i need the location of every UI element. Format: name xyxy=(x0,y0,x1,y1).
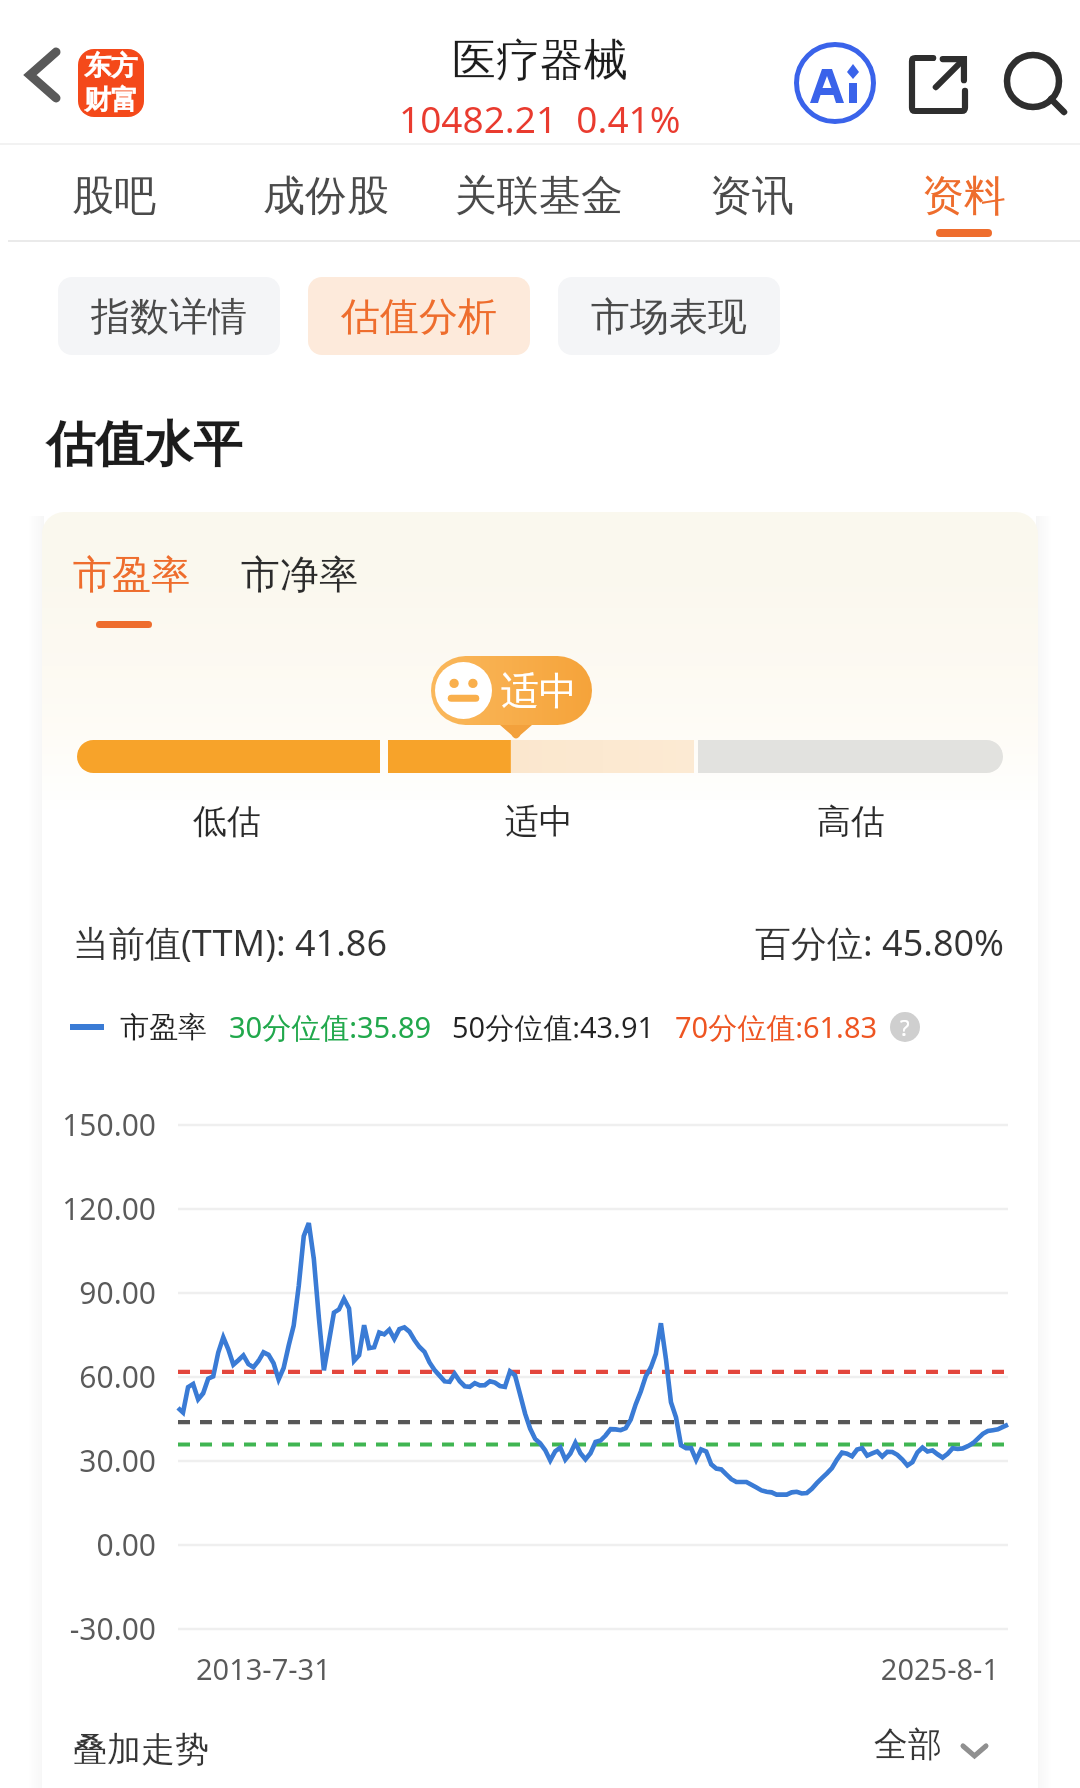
button[interactable]: 股吧 xyxy=(4,158,224,240)
button[interactable]: 指数详情 xyxy=(58,277,280,355)
staticText: 医疗器械 xyxy=(452,33,628,88)
staticText: 估值水平 xyxy=(46,414,242,476)
staticText: 财富 xyxy=(84,83,138,117)
staticText: 30分位值:35.89 xyxy=(229,1007,432,1047)
button[interactable]: 关联基金 xyxy=(429,158,649,240)
button[interactable]: 市场表现 xyxy=(558,277,780,355)
staticText: 30.00 xyxy=(42,1440,156,1481)
staticText: 东方 xyxy=(84,49,138,83)
staticText: 市盈率 xyxy=(120,1009,207,1046)
button[interactable]: AI助手 xyxy=(793,41,877,125)
staticText: 0.00 xyxy=(42,1524,156,1565)
staticText: 百分位: 45.80% xyxy=(693,918,1004,967)
staticText: 全部 xyxy=(874,1723,942,1766)
button[interactable]: Search xyxy=(991,39,1075,123)
staticText: 叠加走势 xyxy=(73,1728,209,1771)
button[interactable]: 市净率 xyxy=(241,550,358,599)
button[interactable]: 资料 xyxy=(854,158,1074,240)
staticText: 150.00 xyxy=(42,1104,156,1145)
staticText: 资讯 xyxy=(710,170,794,223)
button[interactable]: Share xyxy=(897,43,980,126)
button[interactable]: 东方财富 xyxy=(78,49,144,117)
staticText: 70分位值:61.83 xyxy=(675,1007,878,1047)
staticText: 适中 xyxy=(439,800,639,843)
staticText: -30.00 xyxy=(42,1608,156,1649)
staticText: 低估 xyxy=(127,800,327,843)
staticText: 高估 xyxy=(751,800,951,843)
staticText: 市场表现 xyxy=(591,292,747,341)
staticText: 2013-7-31 xyxy=(196,1649,331,1688)
staticText: 当前值(TTM): 41.86 xyxy=(73,918,388,967)
staticText: 50分位值:43.91 xyxy=(452,1007,655,1047)
staticText: 成份股 xyxy=(263,170,389,223)
staticText: 股吧 xyxy=(72,170,156,223)
staticText: 指数详情 xyxy=(91,292,247,341)
staticText: 60.00 xyxy=(42,1356,156,1397)
button[interactable]: 说明 xyxy=(890,1012,920,1042)
staticText: 估值分析 xyxy=(341,292,497,341)
staticText: 10482.21 0.41% xyxy=(399,93,681,143)
staticText: 适中 xyxy=(501,667,577,715)
button[interactable]: Back xyxy=(6,38,80,112)
button[interactable]: 市盈率 xyxy=(73,550,190,628)
button[interactable]: 全部 xyxy=(874,1718,988,1770)
staticText: ? xyxy=(900,1012,910,1042)
staticText: 资料 xyxy=(922,170,1006,223)
staticText: 关联基金 xyxy=(455,170,623,223)
button[interactable]: 资讯 xyxy=(642,158,862,240)
staticText: 2025-8-1 xyxy=(799,1649,999,1688)
button[interactable]: 估值分析 xyxy=(308,277,530,355)
staticText: 90.00 xyxy=(42,1272,156,1313)
staticText: 120.00 xyxy=(42,1188,156,1229)
staticText: 市盈率 xyxy=(73,550,190,599)
button[interactable]: 成份股 xyxy=(216,158,436,240)
